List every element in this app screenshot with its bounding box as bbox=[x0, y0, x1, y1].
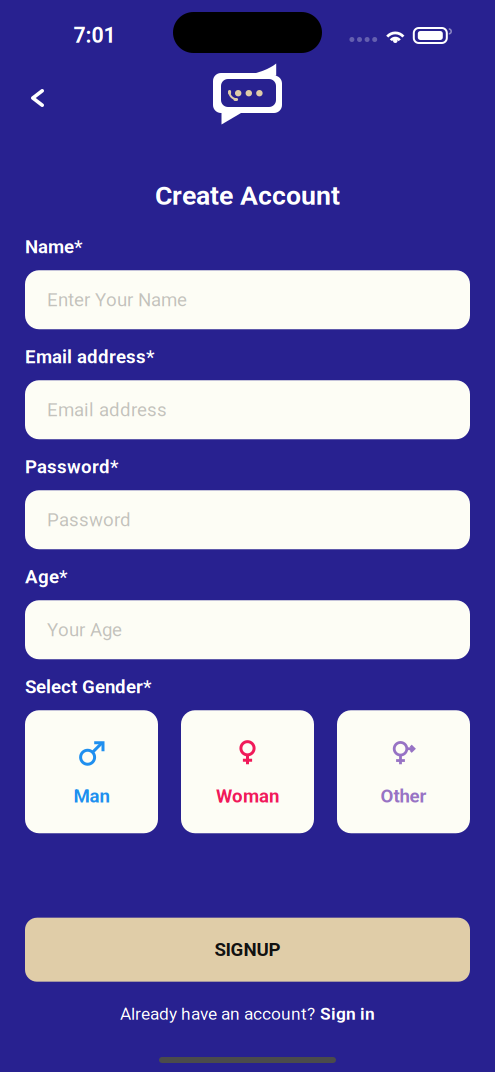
button[interactable]: Other bbox=[337, 710, 470, 833]
staticText: Sign in bbox=[320, 1004, 375, 1024]
button[interactable]: Woman bbox=[181, 710, 314, 833]
staticText: 7:01 bbox=[73, 23, 115, 48]
staticText: Select Gender* bbox=[25, 676, 151, 698]
button[interactable]: Password bbox=[25, 490, 470, 549]
staticText: Other bbox=[380, 785, 426, 807]
button[interactable]: Email address bbox=[25, 380, 470, 439]
staticText: Man bbox=[73, 785, 109, 807]
staticText: Already have an account? bbox=[120, 1004, 315, 1024]
staticText: Name* bbox=[25, 236, 82, 258]
staticText: Create Account bbox=[155, 180, 340, 211]
staticText: SIGNUP bbox=[214, 939, 280, 961]
button[interactable]: Back bbox=[19, 77, 56, 119]
button[interactable]: Enter Your Name bbox=[25, 270, 470, 329]
staticText: Woman bbox=[216, 785, 279, 807]
staticText: Password* bbox=[25, 456, 118, 478]
staticText: Password bbox=[47, 509, 131, 531]
button[interactable]: SIGNUP bbox=[25, 918, 470, 982]
button[interactable]: Already have an account? bbox=[120, 999, 375, 1029]
staticText: Email address bbox=[47, 399, 167, 421]
staticText: Email address* bbox=[25, 346, 154, 368]
button[interactable]: Your Age bbox=[25, 600, 470, 659]
staticText: Enter Your Name bbox=[47, 289, 187, 311]
staticText: Age* bbox=[25, 566, 67, 588]
staticText: Your Age bbox=[47, 619, 122, 641]
button[interactable]: Man bbox=[25, 710, 158, 833]
